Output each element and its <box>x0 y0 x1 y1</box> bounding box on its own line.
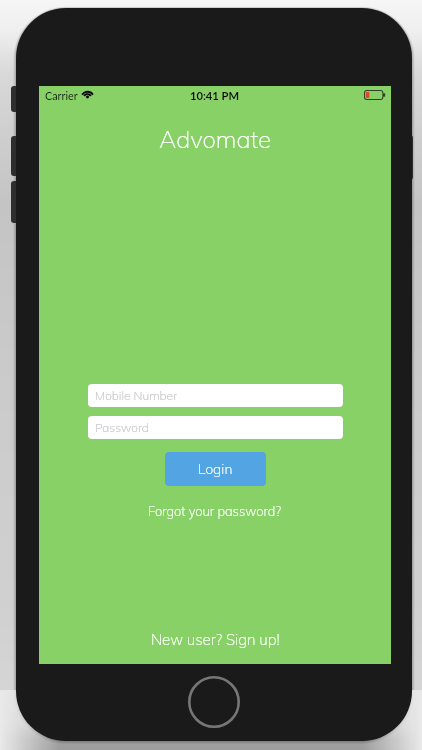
button[interactable]: Mobile Number <box>88 384 343 407</box>
button[interactable]: Login <box>165 452 266 486</box>
button[interactable]: New user? Sign up! <box>39 628 391 651</box>
staticText: Forgot your password? <box>148 503 282 519</box>
staticText: Carrier <box>45 89 78 102</box>
staticText: Login <box>198 460 233 478</box>
button[interactable]: Forgot your password? <box>39 501 391 521</box>
other: Battery <box>364 90 386 100</box>
staticText: Advomate <box>39 124 391 154</box>
staticText: 10:41 PM <box>190 89 240 102</box>
staticText: Mobile Number <box>95 388 177 403</box>
other: Wi-Fi <box>81 90 94 98</box>
button[interactable]: Password <box>88 416 343 439</box>
staticText: New user? Sign up! <box>151 630 280 649</box>
staticText: Password <box>95 420 149 435</box>
